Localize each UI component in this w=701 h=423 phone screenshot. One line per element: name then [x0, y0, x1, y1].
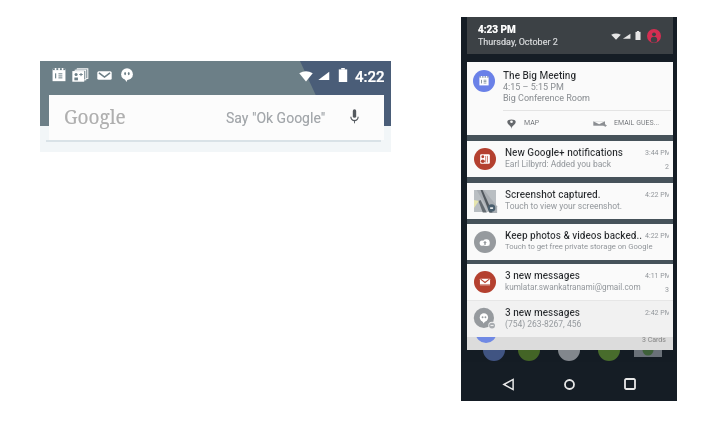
staticText: (754) 263-8267, 456 [505, 319, 582, 329]
staticText: 4:22 PM [645, 232, 669, 240]
button[interactable]: New Google+ notifications [467, 141, 673, 177]
button[interactable]: The Big Meeting [467, 62, 673, 135]
staticText: New Google+ notifications [505, 147, 623, 159]
button[interactable]: Account [647, 29, 661, 43]
staticText: 3 Cards [642, 336, 666, 344]
button[interactable]: Back [494, 370, 522, 398]
staticText: Say "Ok Google" [226, 110, 326, 126]
staticText: Google [64, 104, 126, 130]
button[interactable]: EMAIL GUES... [593, 111, 673, 135]
staticText: 3:44 PM [645, 149, 669, 157]
button[interactable]: Google [49, 95, 384, 140]
staticText: Earl Lilbyrd: Added you back [505, 159, 612, 169]
staticText: 2:42 PM [645, 309, 669, 317]
staticText: 4:22 [355, 68, 385, 82]
staticText: 2 [665, 163, 669, 171]
staticText: 4:22 PM [645, 191, 669, 199]
staticText: 3 new messages [505, 270, 580, 282]
staticText: kumlatar.swankatranami@gmail.com [505, 282, 641, 292]
staticText: Keep photos & videos backed.. [505, 230, 642, 242]
staticText: Touch to get free private storage on Goo… [505, 242, 653, 251]
staticText: MAP [524, 119, 540, 127]
button[interactable]: Screenshot captured. [467, 183, 673, 219]
staticText: Screenshot captured. [505, 189, 601, 201]
button[interactable]: 3 new messages [467, 264, 673, 300]
button[interactable]: Keep photos & videos backed.. [467, 224, 673, 260]
button[interactable]: Home [555, 370, 583, 398]
staticText: 4:15 – 5:15 PM [503, 82, 564, 93]
staticText: Thursday, October 2 [478, 37, 558, 48]
staticText: 3 new messages [505, 307, 580, 319]
staticText: EMAIL GUES... [614, 119, 660, 127]
staticText: Big Conference Room [503, 93, 590, 104]
staticText: 3 [665, 286, 669, 294]
button[interactable]: 3 new messages [467, 301, 673, 337]
button[interactable]: Recents [616, 370, 644, 398]
staticText: Touch to view your screenshot. [505, 201, 623, 211]
staticText: 4:11 PM [645, 272, 669, 280]
staticText: 4:23 PM [478, 24, 516, 36]
staticText: The Big Meeting [503, 70, 577, 82]
button[interactable]: MAP [507, 111, 552, 135]
